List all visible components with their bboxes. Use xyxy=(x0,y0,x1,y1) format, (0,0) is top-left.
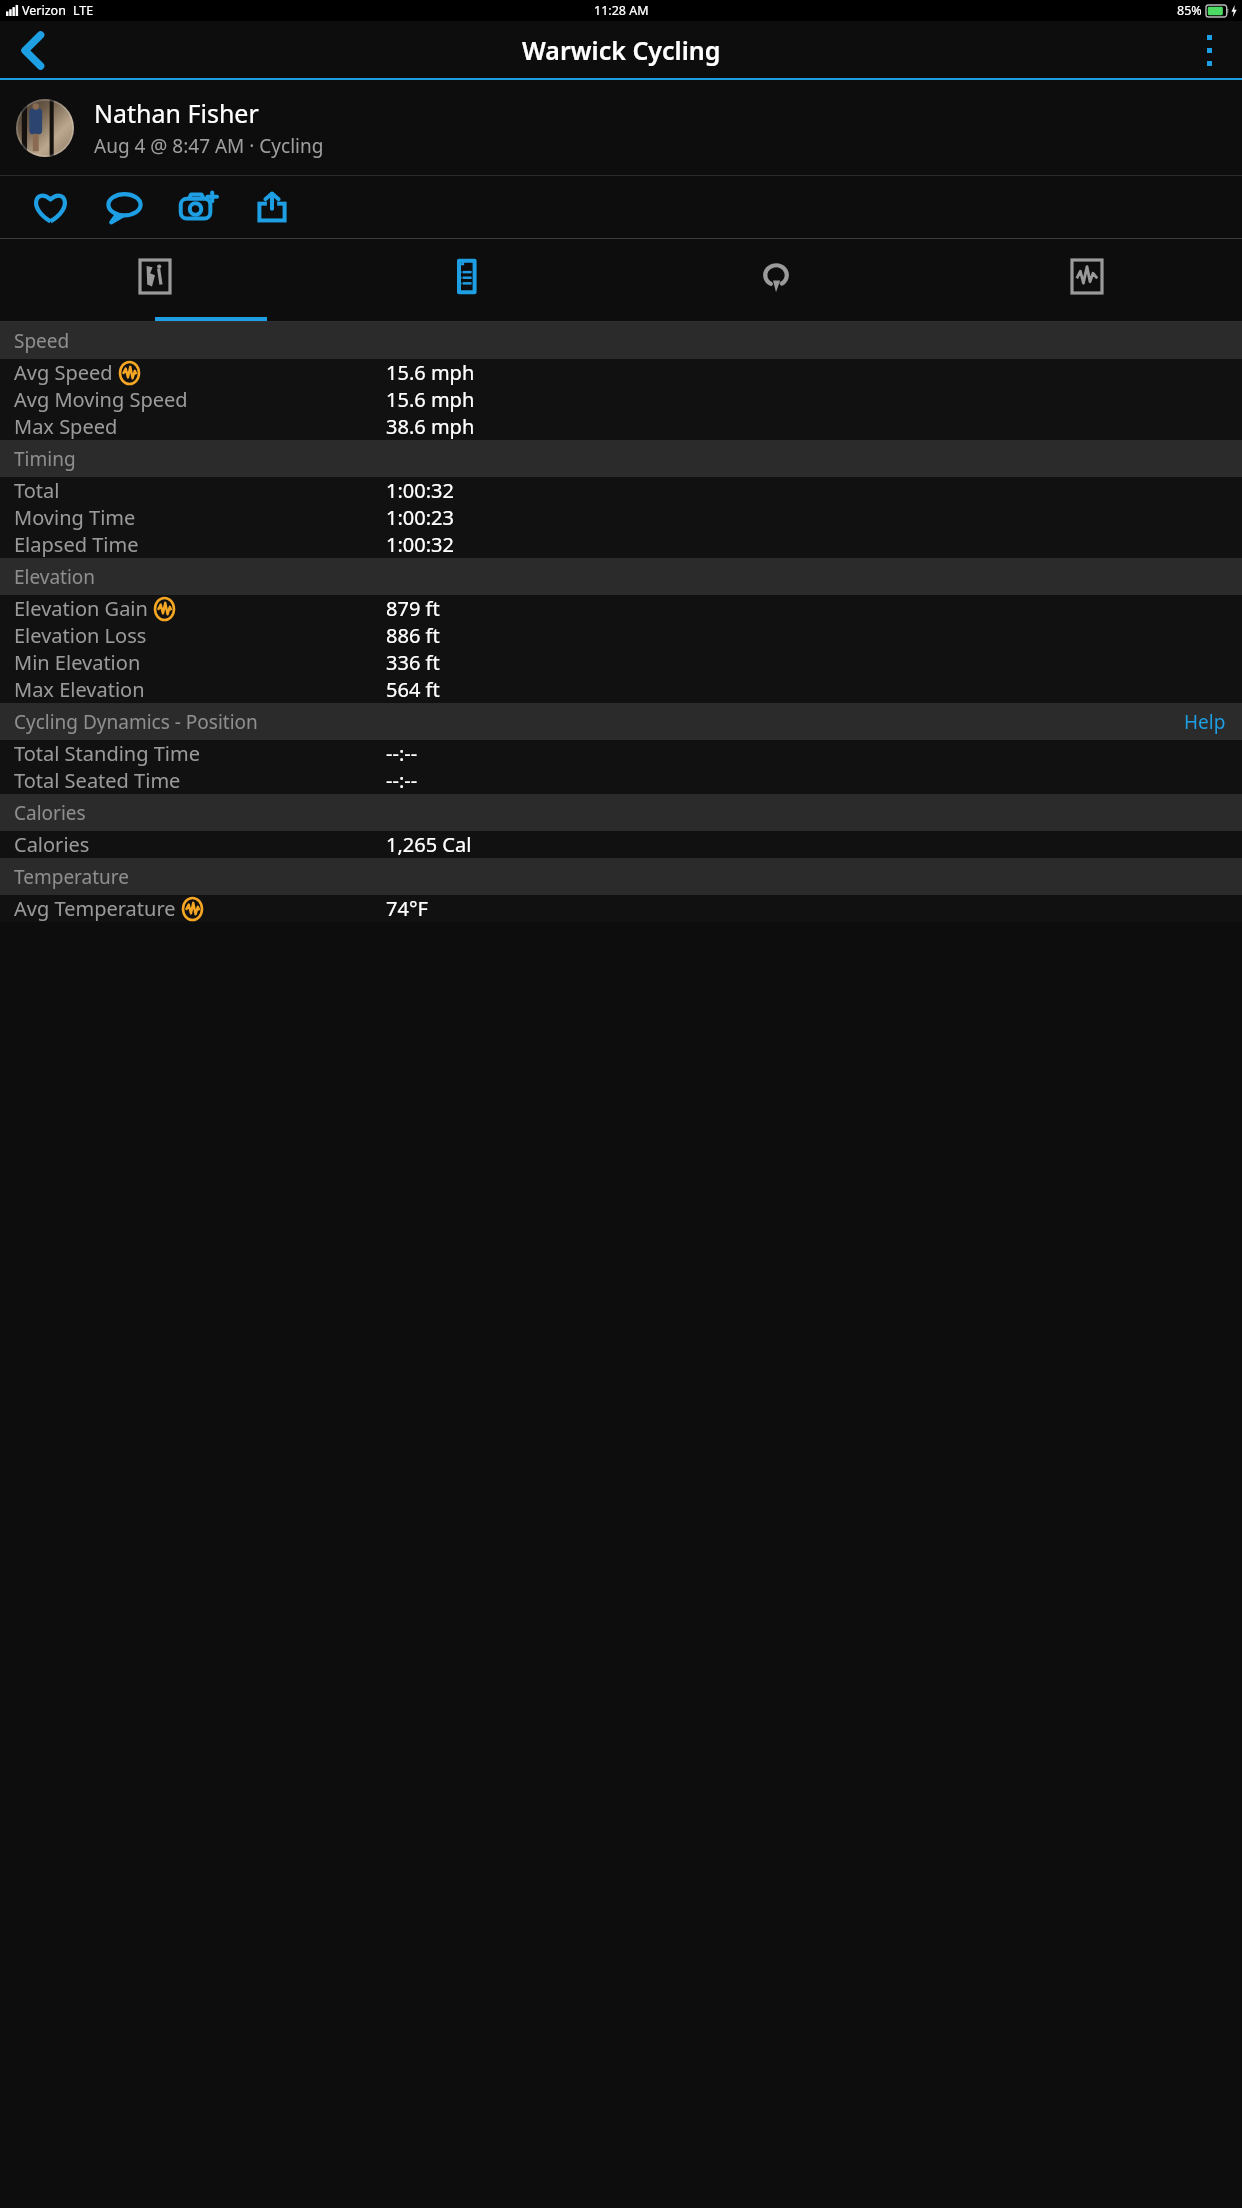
staticText: Min Elevation xyxy=(14,649,141,676)
button[interactable]: Avg Moving Speed xyxy=(0,386,1242,413)
staticText: Timing xyxy=(14,446,76,472)
staticText: Aug 4 @ 8:47 AM · Cycling xyxy=(94,133,324,159)
staticText: Total xyxy=(14,477,60,504)
button[interactable]: Nathan Fisher xyxy=(0,80,1242,175)
staticText: Total Seated Time xyxy=(14,767,181,794)
button[interactable]: Moving Time xyxy=(0,504,1242,531)
staticText: Warwick Cycling xyxy=(522,33,721,67)
button[interactable]: Max Speed xyxy=(0,413,1242,440)
staticText: Calories xyxy=(14,831,90,858)
staticText: 1:00:23 xyxy=(386,504,454,531)
staticText: Speed xyxy=(14,328,70,354)
button[interactable]: Avg Speed xyxy=(0,359,1242,386)
staticText: 879 ft xyxy=(386,595,440,622)
staticText: --:-- xyxy=(386,767,418,794)
button[interactable]: Total Standing Time xyxy=(0,740,1242,767)
staticText: Calories xyxy=(14,800,86,826)
staticText: 85% xyxy=(1177,2,1202,19)
button[interactable]: Add photo xyxy=(174,183,222,231)
staticText: Avg Temperature xyxy=(14,895,176,922)
staticText: 15.6 mph xyxy=(386,386,475,413)
staticText: Verizon xyxy=(22,2,66,19)
button[interactable]: Elevation Gain xyxy=(0,595,1242,622)
staticText: 336 ft xyxy=(386,649,440,676)
button[interactable]: Avg Temperature xyxy=(0,895,1242,922)
staticText: LTE xyxy=(73,2,94,19)
button[interactable]: Total Seated Time xyxy=(0,767,1242,794)
button[interactable]: Share xyxy=(248,183,296,231)
staticText: 1,265 Cal xyxy=(386,831,472,858)
staticText: Avg Moving Speed xyxy=(14,386,188,413)
button[interactable]: Max Elevation xyxy=(0,676,1242,703)
button[interactable]: Comment xyxy=(100,183,148,231)
staticText: 11:28 AM xyxy=(594,2,649,19)
staticText: Cycling Dynamics - Position xyxy=(14,709,258,735)
button[interactable]: Help xyxy=(1168,703,1242,740)
staticText: 886 ft xyxy=(386,622,440,649)
staticText: 564 ft xyxy=(386,676,440,703)
button[interactable]: Calories xyxy=(0,831,1242,858)
button[interactable]: Like xyxy=(26,183,74,231)
staticText: Max Speed xyxy=(14,413,118,440)
staticText: 1:00:32 xyxy=(386,477,454,504)
button[interactable]: More options xyxy=(1186,27,1232,73)
staticText: Temperature xyxy=(14,864,130,890)
staticText: --:-- xyxy=(386,740,418,767)
button[interactable]: Elapsed Time xyxy=(0,531,1242,558)
button[interactable]: Elevation Loss xyxy=(0,622,1242,649)
staticText: 1:00:32 xyxy=(386,531,454,558)
button[interactable]: Map xyxy=(0,239,310,322)
staticText: 15.6 mph xyxy=(386,359,475,386)
staticText: Moving Time xyxy=(14,504,136,531)
staticText: 74°F xyxy=(386,895,428,922)
button[interactable]: Charts xyxy=(931,239,1242,322)
staticText: Elevation Loss xyxy=(14,622,147,649)
button[interactable]: Total xyxy=(0,477,1242,504)
staticText: Elevation xyxy=(14,564,96,590)
staticText: Max Elevation xyxy=(14,676,145,703)
button[interactable]: Min Elevation xyxy=(0,649,1242,676)
staticText: Total Standing Time xyxy=(14,740,200,767)
staticText: Nathan Fisher xyxy=(94,96,259,130)
button[interactable]: Back xyxy=(8,25,58,75)
staticText: Help xyxy=(1184,709,1226,735)
button[interactable]: Laps xyxy=(620,239,931,322)
button[interactable]: Details xyxy=(310,239,620,322)
staticText: Avg Speed xyxy=(14,359,113,386)
staticText: Elapsed Time xyxy=(14,531,139,558)
staticText: Elevation Gain xyxy=(14,595,148,622)
staticText: 38.6 mph xyxy=(386,413,475,440)
